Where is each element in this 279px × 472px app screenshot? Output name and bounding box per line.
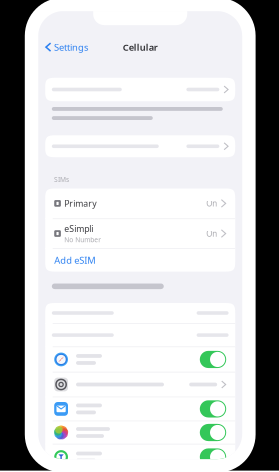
button[interactable]: Mail cellular data: [45, 397, 235, 420]
button[interactable]: Settings: [38, 38, 88, 56]
button[interactable]: Add eSIM: [45, 249, 235, 272]
staticText: On: [206, 198, 217, 209]
button[interactable]: Find My cellular data: [45, 444, 235, 469]
staticText: Primary: [64, 197, 96, 209]
button[interactable]: Cellular data option: [45, 324, 235, 346]
button[interactable]: Photos cellular data: [45, 421, 235, 444]
button[interactable]: Primary: [45, 188, 235, 218]
staticText: On: [206, 228, 217, 239]
staticText: SIMs: [54, 175, 69, 184]
button[interactable]: eSimpli: [45, 219, 235, 248]
staticText: No Number: [64, 235, 101, 244]
button[interactable]: Cellular data option: [45, 303, 235, 323]
button[interactable]: Safari cellular data: [45, 347, 235, 372]
staticText: Cellular: [123, 41, 158, 53]
staticText: Add eSIM: [54, 254, 95, 266]
staticText: Settings: [54, 41, 88, 53]
button[interactable]: Settings cellular data: [45, 372, 235, 396]
staticText: eSimpli: [64, 223, 93, 235]
